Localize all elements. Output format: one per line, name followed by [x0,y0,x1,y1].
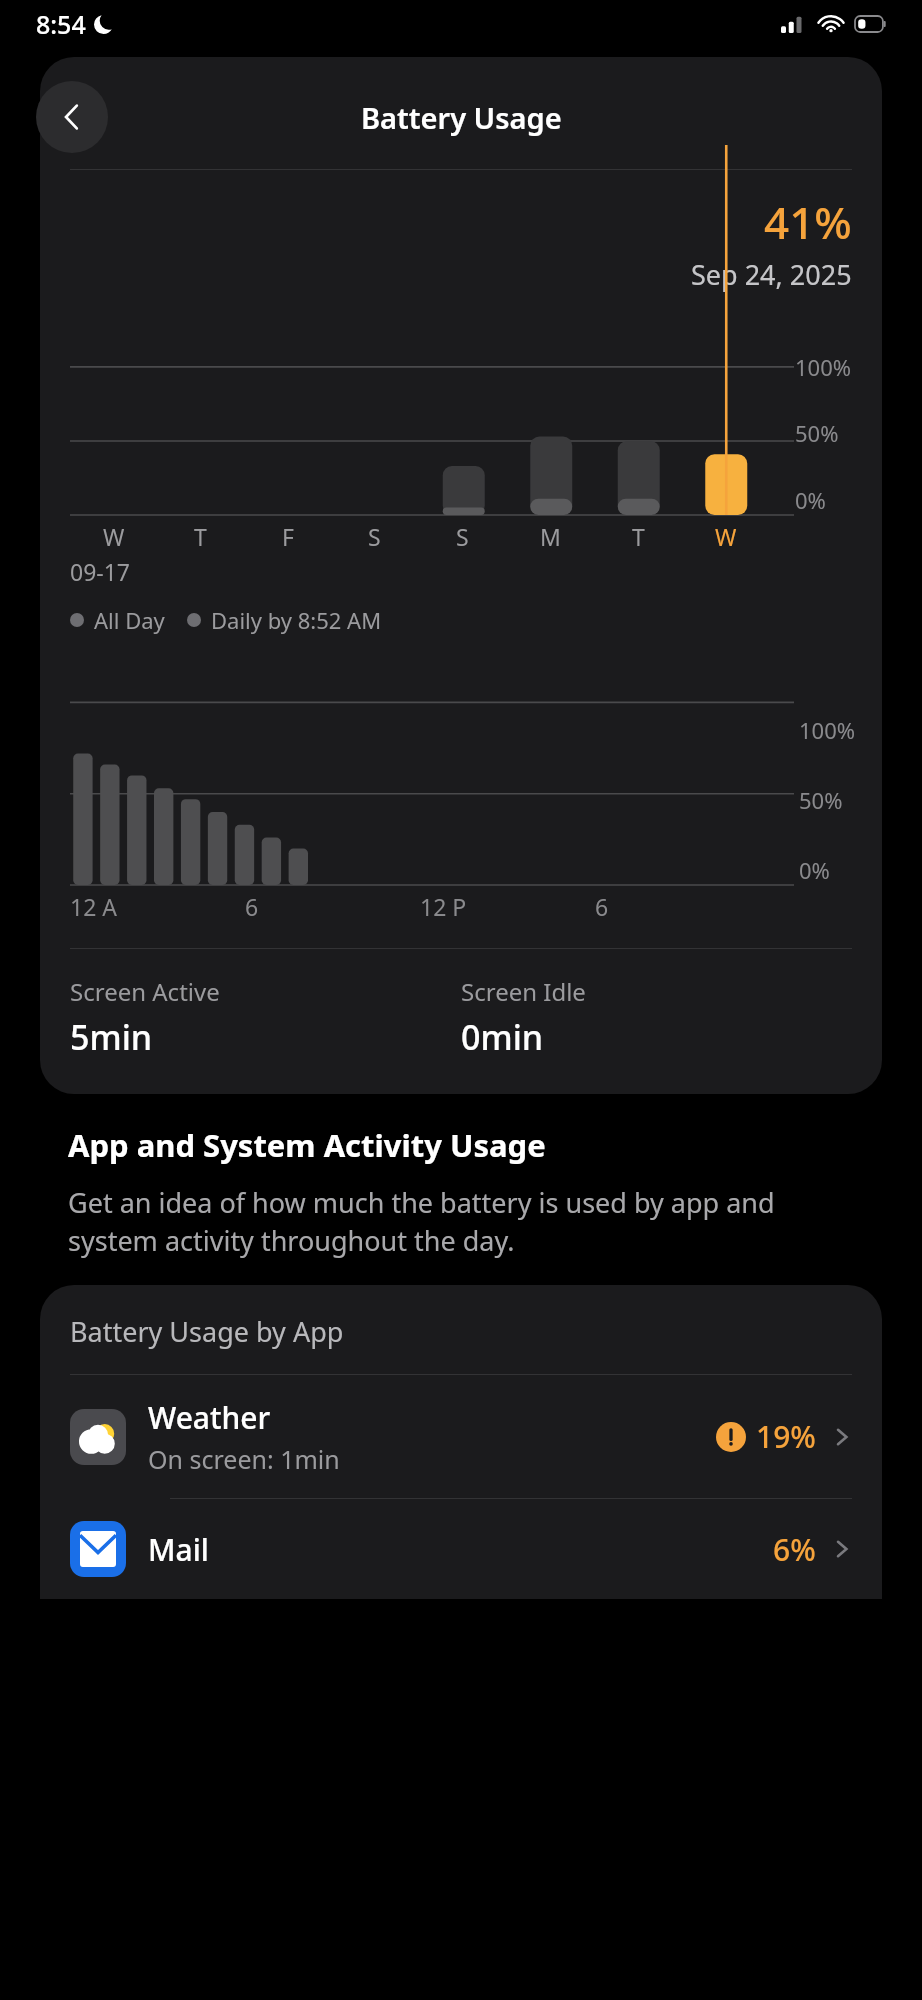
staticText: On screen: 1min [148,1442,340,1476]
staticText: Mail [148,1529,209,1570]
staticText: Battery Usage [361,98,562,137]
button[interactable]: Weather [40,1375,882,1498]
staticText: Screen Active [70,975,220,1008]
staticText: 6 [245,891,259,922]
staticText: Get an idea of how much the battery is u… [68,1184,854,1259]
staticText: 50% [799,785,843,815]
staticText: 6 [595,891,609,922]
staticText: 100% [795,352,852,382]
staticText: 6% [773,1529,816,1570]
staticText: S [368,521,381,552]
staticText: F [282,521,294,552]
staticText: 09-17 [70,556,131,587]
staticText: 12 A [70,891,117,922]
staticText: W [715,521,737,552]
staticText: 12 P [420,891,467,922]
staticText: M [540,521,561,552]
staticText: 100% [799,715,856,745]
staticText: T [632,521,645,552]
staticText: Sep 24, 2025 [691,256,852,293]
staticText: 0% [799,855,830,885]
button[interactable]: Back [36,81,108,153]
staticText: Screen Idle [461,975,586,1008]
staticText: T [194,521,207,552]
button[interactable]: Mail [40,1499,882,1599]
staticText: All Day [94,605,165,635]
staticText: S [456,521,469,552]
staticText: 5min [70,1014,153,1060]
staticText: Daily by 8:52 AM [211,605,382,635]
staticText: W [103,521,125,552]
staticText: App and System Activity Usage [68,1124,546,1166]
staticText: 8:54 [36,7,86,41]
staticText: 0% [795,485,826,515]
staticText: Weather [148,1397,271,1438]
staticText: Battery Usage by App [70,1313,344,1350]
staticText: 41% [764,192,852,252]
staticText: 50% [795,418,839,448]
staticText: 19% [756,1416,816,1457]
staticText: 0min [461,1014,544,1060]
